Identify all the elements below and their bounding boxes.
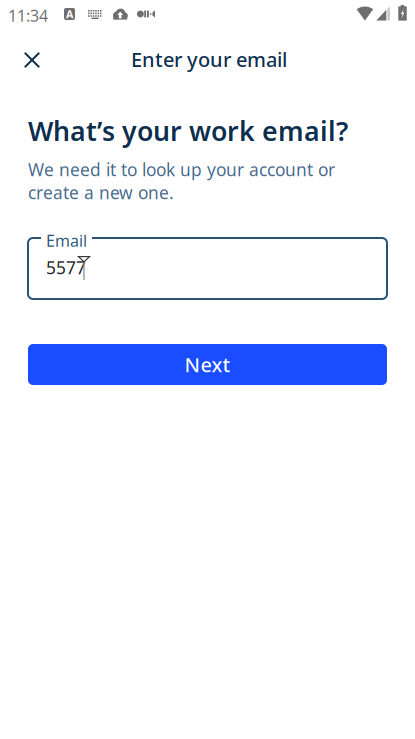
staticText: What’s your work email?: [28, 113, 348, 148]
button[interactable]: Next: [28, 344, 387, 385]
button[interactable]: 5577: [28, 234, 387, 300]
staticText: Email: [46, 230, 87, 251]
button[interactable]: Close: [12, 40, 52, 80]
staticText: 5577: [46, 256, 86, 279]
staticText: 11:34: [8, 5, 48, 26]
staticText: Next: [184, 351, 230, 378]
staticText: Enter your email: [131, 46, 287, 73]
staticText: We need it to look up your account or cr…: [28, 158, 335, 204]
staticText: A: [66, 7, 73, 21]
